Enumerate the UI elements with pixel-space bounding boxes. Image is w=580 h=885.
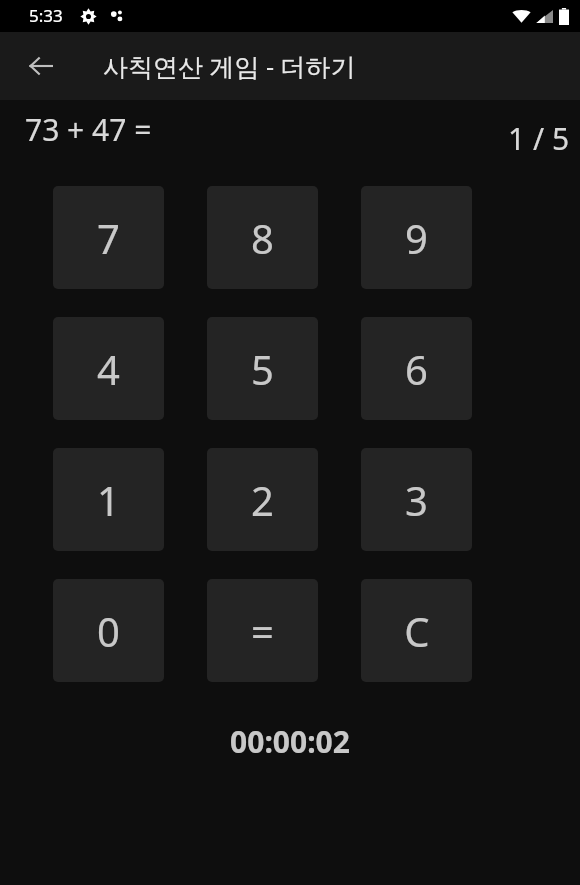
staticText: 사칙연산 게임 - 더하기 [103,49,356,83]
button[interactable]: 3 [361,448,472,551]
button[interactable]: 5 [207,317,318,420]
staticText: 2 [251,473,274,527]
button[interactable]: Back [17,42,65,90]
staticText: 6 [405,342,428,396]
staticText: 73 + 47 = [25,109,152,150]
staticText: 9 [405,211,428,265]
button[interactable]: 9 [361,186,472,289]
staticText: 5 [251,342,274,396]
staticText: 00:00:02 [230,721,350,762]
staticText: 1 [97,473,120,527]
staticText: 7 [97,211,120,265]
button[interactable]: = [207,579,318,682]
button[interactable]: 2 [207,448,318,551]
staticText: 3 [405,473,428,527]
button[interactable]: 1 [53,448,164,551]
button[interactable]: 8 [207,186,318,289]
staticText: 1 / 5 [508,118,570,159]
staticText: 4 [97,342,120,396]
button[interactable]: 0 [53,579,164,682]
staticText: 0 [97,604,120,658]
button[interactable]: 6 [361,317,472,420]
staticText: 5:33 [29,4,63,27]
button[interactable]: 7 [53,186,164,289]
staticText: C [404,604,430,658]
button[interactable]: C [361,579,472,682]
staticText: 8 [251,211,274,265]
staticText: = [251,604,274,658]
button[interactable]: 4 [53,317,164,420]
